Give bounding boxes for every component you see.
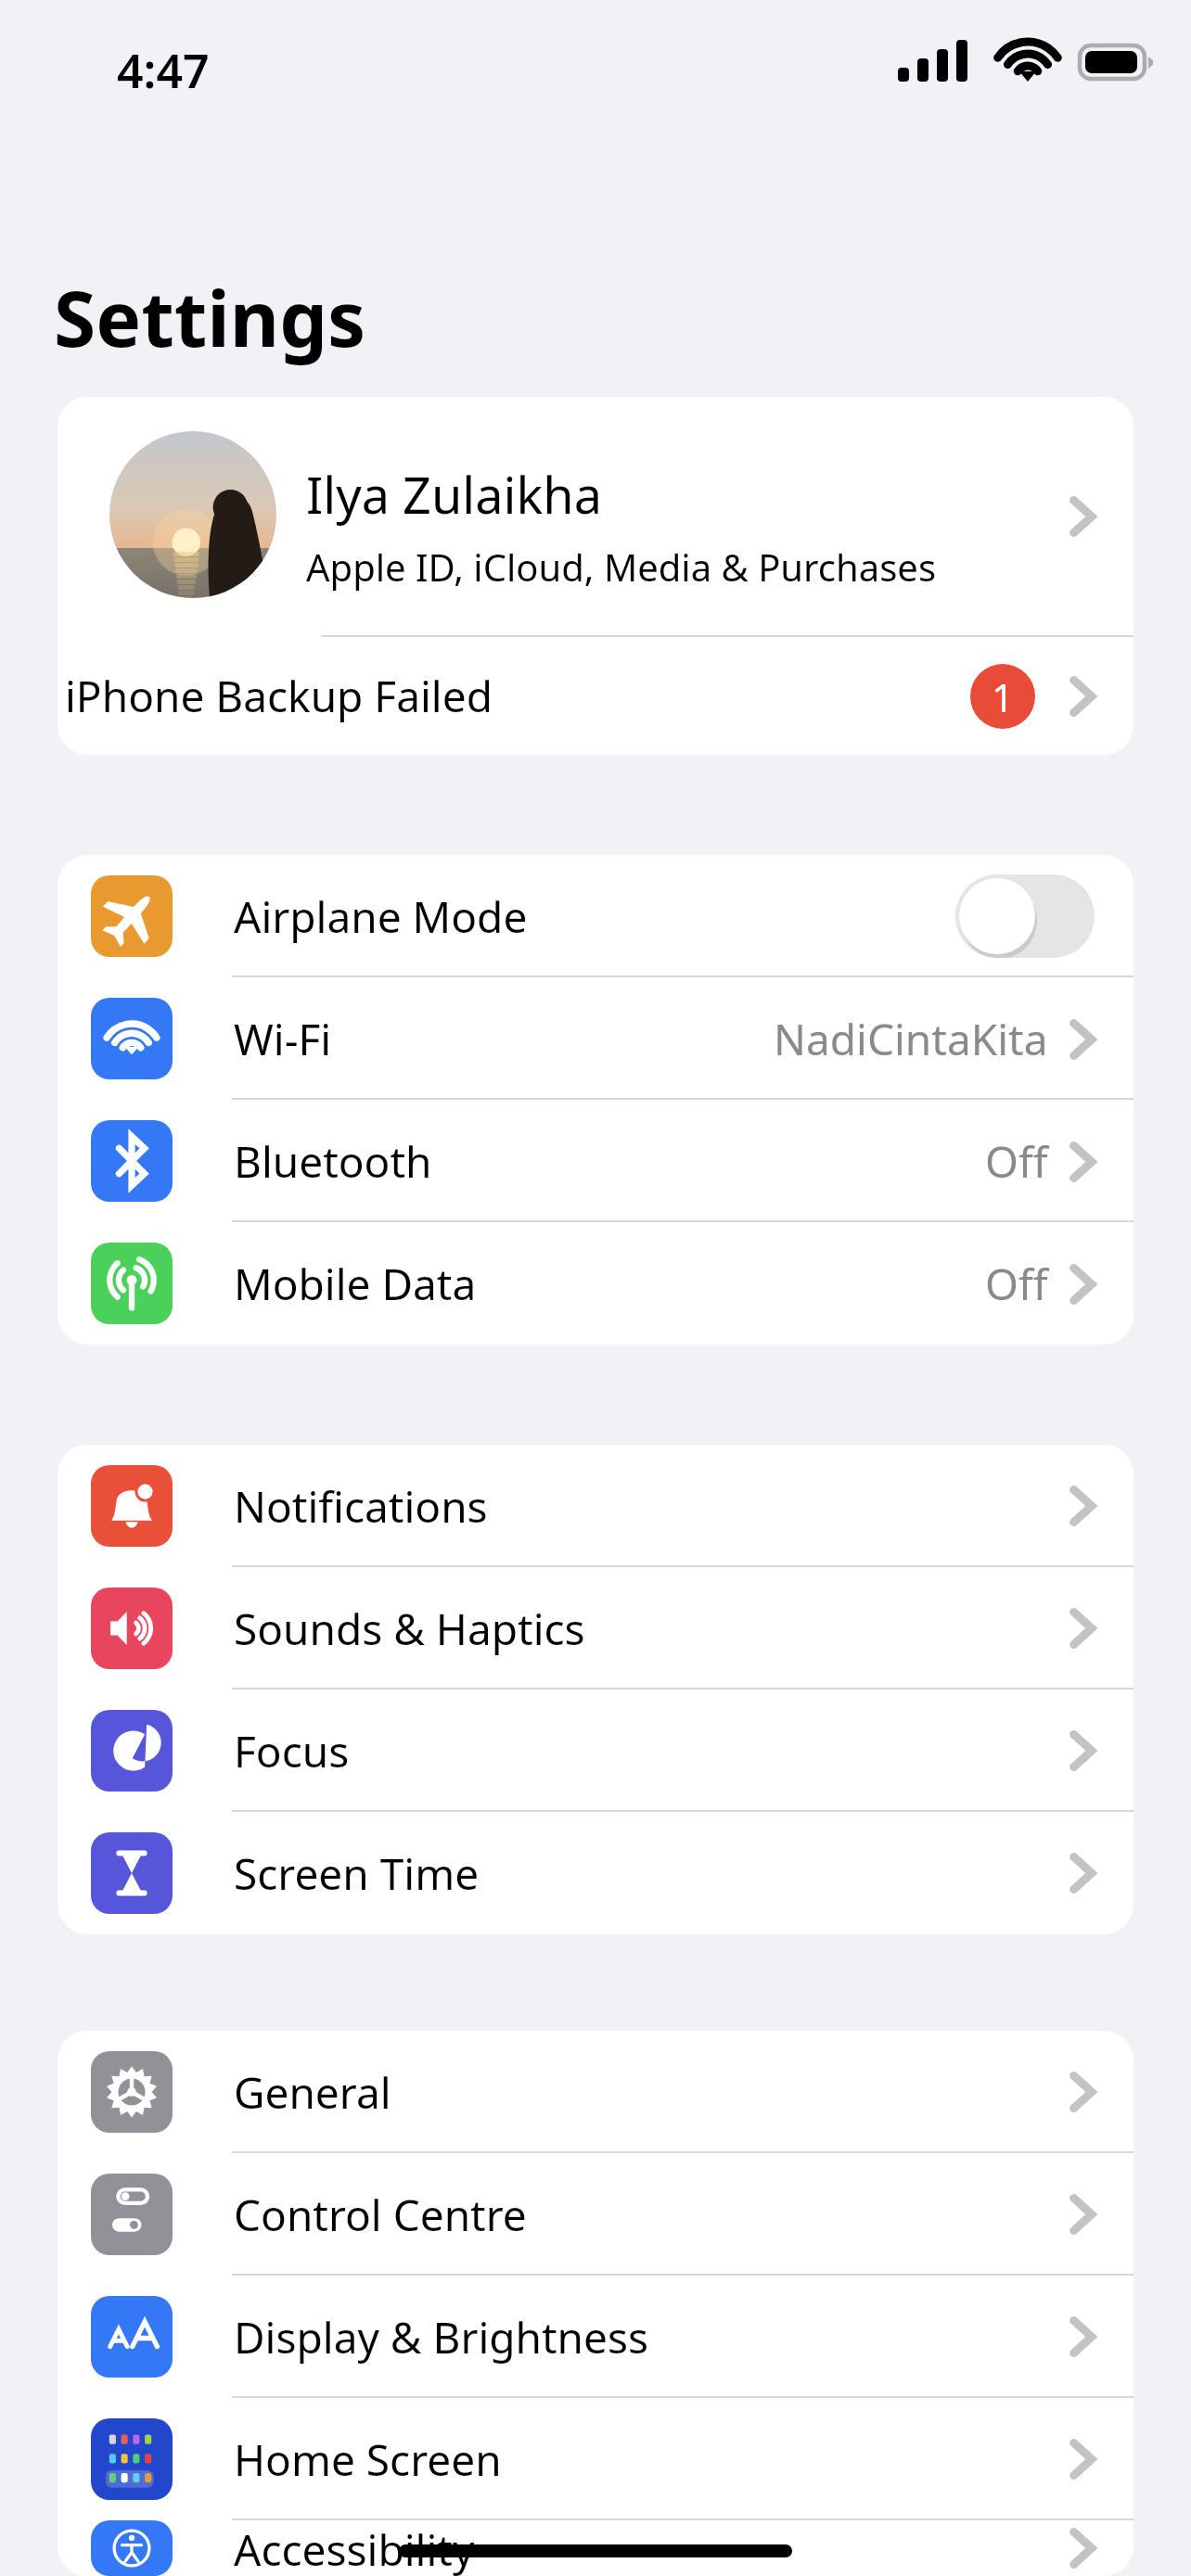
staticText: Mobile Data [234,1255,477,1313]
button[interactable]: Control Centre [58,2153,1133,2276]
staticText: Control Centre [234,2186,527,2244]
button[interactable]: Focus [58,1690,1133,1812]
button[interactable]: Home Screen [58,2398,1133,2520]
staticText: Bluetooth [234,1132,432,1191]
staticText: 4:47 [117,39,210,102]
button[interactable]: Screen Time [58,1812,1133,1934]
button[interactable]: General [58,2031,1133,2153]
button[interactable]: Display & Brightness [58,2276,1133,2398]
button[interactable]: Accessibility [58,2520,1133,2576]
button[interactable]: Ilya Zulaikha [58,397,1133,635]
staticText: Home Screen [234,2430,502,2489]
staticText: Off [985,1255,1048,1313]
staticText: 1 [992,670,1015,723]
staticText: Airplane Mode [234,887,528,946]
staticText: Ilya Zulaikha [306,460,603,529]
staticText: Screen Time [234,1844,480,1903]
staticText: iPhone Backup Failed [65,667,493,725]
staticText: Display & Brightness [234,2308,649,2366]
staticText: Focus [234,1722,350,1780]
button[interactable]: Airplane Mode [58,855,1133,977]
staticText: Off [985,1132,1048,1191]
button[interactable]: Wi-Fi [58,977,1133,1100]
staticText: NadiCintaKita [774,1010,1048,1068]
button[interactable]: Notifications [58,1445,1133,1567]
button[interactable]: Mobile Data [58,1222,1133,1345]
button[interactable]: Sounds & Haptics [58,1567,1133,1690]
button[interactable]: Bluetooth [58,1100,1133,1222]
staticText: Sounds & Haptics [234,1600,585,1658]
staticText: Accessibility [234,2520,475,2576]
staticText: Apple ID, iCloud, Media & Purchases [306,542,937,592]
staticText: Notifications [234,1477,488,1536]
button[interactable]: iPhone Backup Failed [58,637,1133,755]
staticText: Wi-Fi [234,1010,332,1068]
staticText: General [234,2063,391,2122]
button[interactable]: Airplane Mode toggle, off [955,874,1095,958]
staticText: Settings [54,265,366,369]
